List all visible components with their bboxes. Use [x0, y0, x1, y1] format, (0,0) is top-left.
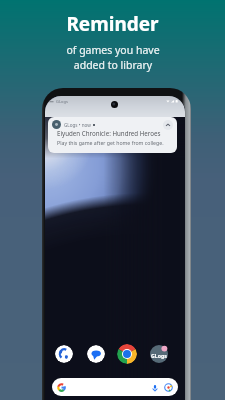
button[interactable]: Phone — [55, 345, 73, 363]
button[interactable]: Messages — [87, 345, 105, 363]
button[interactable]: GLogs • now — [48, 117, 177, 153]
button[interactable]: Chrome — [117, 344, 137, 364]
staticText: Play this game after get home from colle… — [57, 139, 164, 146]
staticText: GLogs — [151, 352, 167, 359]
staticText: Reminder — [66, 11, 159, 37]
button[interactable]: Search — [52, 378, 178, 396]
button[interactable]: Expand notification — [163, 120, 173, 130]
staticText: GLogs • now — [64, 122, 91, 128]
staticText: GLogs — [56, 99, 68, 104]
staticText: Eiyuden Chronicle: Hundred Heroes — [57, 129, 161, 137]
button[interactable]: GLogs — [150, 345, 168, 363]
staticText: of games you have added to library — [66, 43, 160, 72]
